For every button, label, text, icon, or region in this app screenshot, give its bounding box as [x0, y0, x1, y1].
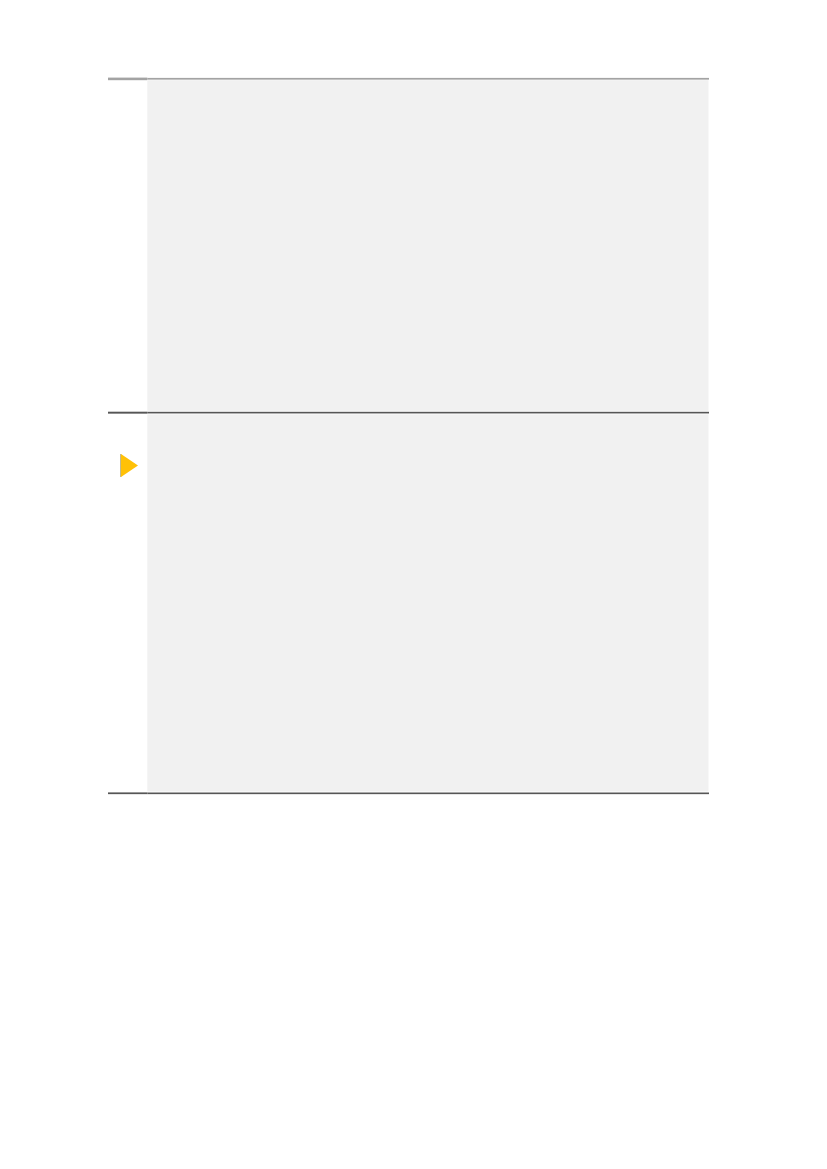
button[interactable]: List item 1 — [108, 78, 709, 412]
button[interactable]: Expand item — [114, 449, 144, 481]
button[interactable]: List item 2 — [108, 412, 709, 793]
